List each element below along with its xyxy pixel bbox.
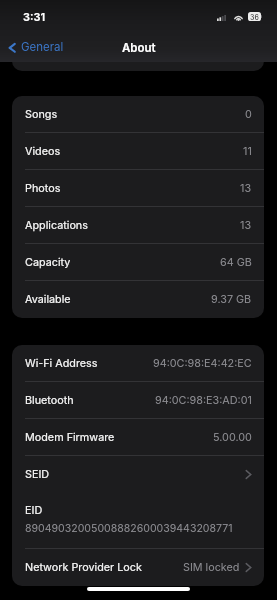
staticText: Available [25,293,71,306]
staticText: 13 [240,219,252,232]
staticText: 11 [243,145,252,158]
staticText: Songs [25,108,58,121]
button[interactable]: Videos [12,133,264,170]
button[interactable]: EID [12,493,264,549]
staticText: Applications [25,219,88,232]
button[interactable]: Network Provider Lock [12,549,264,586]
button[interactable]: General [8,40,64,54]
button[interactable]: Photos [12,170,264,207]
button[interactable]: SEID [12,456,264,493]
button[interactable]: Bluetooth [12,382,264,419]
staticText: 5.00.00 [213,431,252,444]
button[interactable]: Applications [12,207,264,244]
staticText: 9.37 GB [211,293,252,306]
staticText: Wi-Fi Address [25,357,98,370]
staticText: 89049032005008882600039443208771 [25,522,233,535]
staticText: 13 [240,182,252,195]
staticText: 0 [245,108,252,121]
staticText: Videos [25,145,61,158]
staticText: Capacity [25,256,71,269]
staticText: SEID [25,468,50,481]
button[interactable]: Songs [12,96,264,133]
button[interactable]: Available [12,281,264,318]
staticText: 94:0C:98:E3:AD:01 [155,394,252,407]
staticText: 64 GB [220,256,252,269]
staticText: Modem Firmware [25,431,115,444]
staticText: SIM locked [183,561,240,574]
staticText: EID [25,504,43,517]
staticText: 3:31 [23,10,46,23]
staticText: About [122,41,156,55]
staticText: Photos [25,182,61,195]
staticText: General [21,40,64,54]
staticText: Network Provider Lock [25,561,142,574]
staticText: 94:0C:98:E4:42:EC [153,357,252,370]
staticText: 36 [250,13,259,21]
button[interactable]: Modem Firmware [12,419,264,456]
button[interactable]: Capacity [12,244,264,281]
staticText: Bluetooth [25,394,74,407]
button[interactable]: Wi-Fi Address [12,345,264,382]
